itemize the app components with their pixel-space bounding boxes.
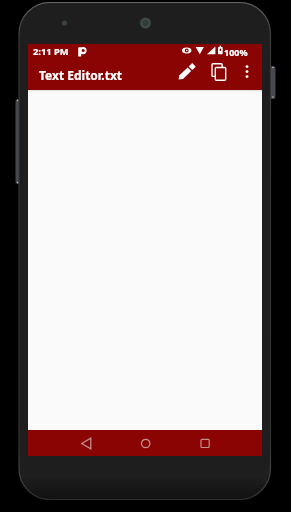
button[interactable] (174, 59, 200, 90)
button[interactable] (191, 430, 219, 456)
button[interactable] (72, 430, 100, 456)
staticText: Text Editor.txt (39, 67, 123, 83)
button[interactable] (238, 59, 258, 90)
staticText: 2:11 PM (33, 45, 69, 58)
button[interactable] (132, 430, 160, 456)
button[interactable] (208, 59, 234, 90)
staticText: 100% (224, 46, 248, 58)
